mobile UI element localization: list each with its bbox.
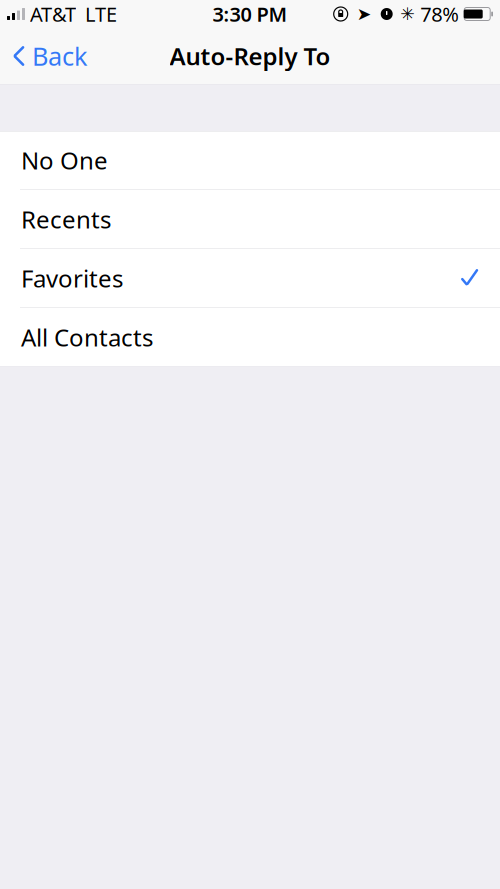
button[interactable]: Back bbox=[0, 31, 88, 81]
staticText: ✳ bbox=[400, 4, 415, 24]
staticText: Auto-Reply To bbox=[169, 40, 330, 72]
staticText: Recents bbox=[21, 203, 111, 235]
button[interactable]: No One bbox=[0, 131, 500, 189]
staticText: ➤ bbox=[357, 4, 372, 24]
button[interactable]: Recents bbox=[0, 190, 500, 248]
staticText: 78% bbox=[420, 1, 459, 27]
button[interactable]: All Contacts bbox=[0, 308, 500, 366]
staticText: No One bbox=[21, 144, 108, 176]
button[interactable]: Favorites bbox=[0, 249, 500, 307]
staticText: LTE bbox=[85, 1, 117, 27]
staticText: Favorites bbox=[21, 262, 123, 294]
staticText: AT&T bbox=[30, 1, 76, 27]
staticText: Back bbox=[32, 39, 88, 73]
staticText: 3:30 PM bbox=[212, 1, 287, 27]
staticText: All Contacts bbox=[21, 321, 153, 353]
